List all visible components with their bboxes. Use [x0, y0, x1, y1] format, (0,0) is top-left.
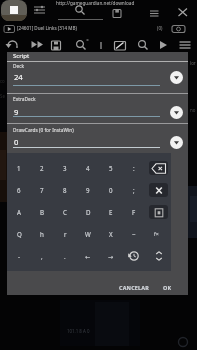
staticText: lor [190, 60, 196, 66]
staticText: A [17, 208, 21, 216]
staticText: OK [163, 284, 172, 291]
button[interactable]: 2 [31, 157, 53, 179]
button[interactable] [149, 183, 168, 197]
staticText: CANCELAR [119, 284, 149, 291]
staticText: Script [13, 52, 30, 60]
button[interactable] [126, 249, 142, 263]
button[interactable]: 0 [100, 179, 122, 201]
button[interactable]: OK [157, 281, 178, 294]
button[interactable]: E [100, 201, 122, 223]
staticText: http://gameguardian.net/download [56, 0, 135, 6]
button[interactable]: Q [8, 223, 30, 245]
button[interactable] [170, 71, 183, 84]
button[interactable]: . [54, 245, 76, 267]
staticText: 4 [86, 164, 90, 172]
button[interactable] [123, 245, 145, 267]
staticText: h [40, 230, 44, 238]
button[interactable]: 7 [31, 179, 53, 201]
button[interactable]: 1 [8, 157, 30, 179]
staticText: - [18, 252, 20, 260]
button[interactable]: → [100, 245, 122, 267]
staticText: F [132, 208, 136, 216]
staticText: 0 [14, 137, 19, 147]
staticText: D [86, 208, 91, 216]
button[interactable]: CANCELAR [110, 281, 158, 294]
staticText: 9 [86, 186, 90, 194]
staticText: Se [0, 93, 5, 99]
staticText: 9 [14, 107, 19, 117]
button[interactable]: C [54, 201, 76, 223]
staticText: ExtraDeck [13, 96, 36, 103]
button[interactable]: r [54, 223, 76, 245]
staticText: W [85, 230, 91, 238]
staticText: 5 [109, 164, 113, 172]
button[interactable] [149, 205, 168, 219]
button[interactable]: B [31, 201, 53, 223]
staticText: 8 [63, 186, 67, 194]
button[interactable]: 3 [54, 157, 76, 179]
staticText: 24 [14, 72, 23, 82]
staticText: no [190, 107, 196, 113]
staticText: ~ [132, 230, 136, 238]
button[interactable] [0, 36, 197, 52]
staticText: 7 [40, 186, 44, 194]
staticText: (0) [157, 25, 163, 31]
button[interactable]: 4 [77, 157, 99, 179]
staticText: Deck [13, 63, 25, 70]
button[interactable]: , [31, 245, 53, 267]
staticText: → [108, 253, 114, 260]
button[interactable]: 9 [77, 179, 99, 201]
staticText: : [133, 164, 135, 172]
staticText: 1 [17, 164, 21, 172]
staticText: 2 [40, 164, 44, 172]
button[interactable] [170, 136, 183, 149]
button[interactable]: - [8, 245, 30, 267]
staticText: ; [133, 186, 135, 194]
staticText: 6 [17, 186, 21, 194]
staticText: f× [154, 230, 159, 237]
button[interactable] [149, 161, 168, 175]
staticText: Q [17, 230, 22, 238]
staticText: 3 [63, 164, 67, 172]
staticText: co [0, 78, 5, 84]
button[interactable]: ; [123, 179, 145, 201]
button[interactable]: ~ [123, 223, 145, 245]
button[interactable]: ← [77, 245, 99, 267]
staticText: 101.1 8 A 0 [67, 328, 90, 334]
staticText: . [64, 252, 66, 260]
staticText: ← [85, 253, 91, 260]
button[interactable] [170, 106, 183, 119]
staticText: DrawCards (0 for InstaWin) [13, 127, 74, 134]
button[interactable]: X [100, 223, 122, 245]
staticText: C [63, 208, 67, 216]
staticText: E [109, 208, 113, 216]
button[interactable]: A [8, 201, 30, 223]
staticText: B [40, 208, 45, 216]
button[interactable]: F [123, 201, 145, 223]
button[interactable] [152, 249, 166, 263]
button[interactable]: W [77, 223, 99, 245]
staticText: 0 [109, 186, 113, 194]
button[interactable]: : [123, 157, 145, 179]
staticText: [24601] Duel Links (314 MB) [17, 25, 77, 31]
button[interactable]: 8 [54, 179, 76, 201]
button[interactable]: h [31, 223, 53, 245]
button[interactable]: 5 [100, 157, 122, 179]
button[interactable] [1, 0, 27, 21]
staticText: X [109, 230, 113, 238]
button[interactable]: 6 [8, 179, 30, 201]
button[interactable]: D [77, 201, 99, 223]
staticText: r [64, 230, 67, 238]
button[interactable] [30, 0, 192, 22]
staticText: , [41, 252, 43, 260]
